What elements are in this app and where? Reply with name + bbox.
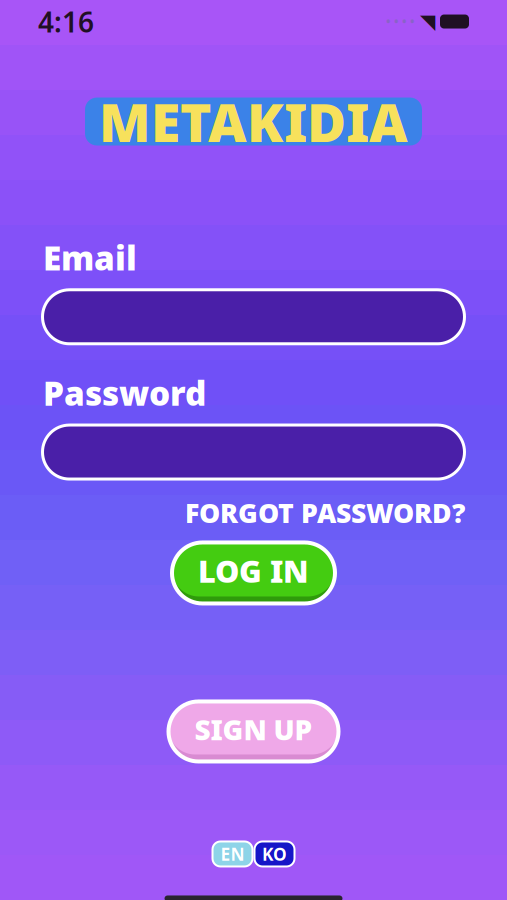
staticText: 4:16 [38, 3, 94, 40]
staticText: KO [262, 842, 287, 865]
button[interactable] [42, 425, 464, 479]
staticText: Email [43, 235, 137, 280]
staticText: METAKIDIA [99, 86, 408, 157]
staticText: FORGOT PASSWORD? [185, 495, 465, 530]
button[interactable] [42, 290, 464, 344]
staticText: EN [220, 842, 244, 865]
button[interactable]: EN [212, 841, 252, 866]
staticText: ◥ [420, 10, 435, 33]
button[interactable]: SIGN UP [168, 701, 338, 761]
button[interactable]: FORGOT PASSWORD? [185, 491, 465, 534]
button[interactable]: LOG IN [172, 542, 335, 603]
staticText: SIGN UP [194, 711, 312, 748]
staticText: LOG IN [198, 551, 309, 591]
button[interactable]: KO [254, 841, 294, 866]
staticText: Password [43, 371, 206, 415]
staticText: • • • • [386, 14, 415, 29]
